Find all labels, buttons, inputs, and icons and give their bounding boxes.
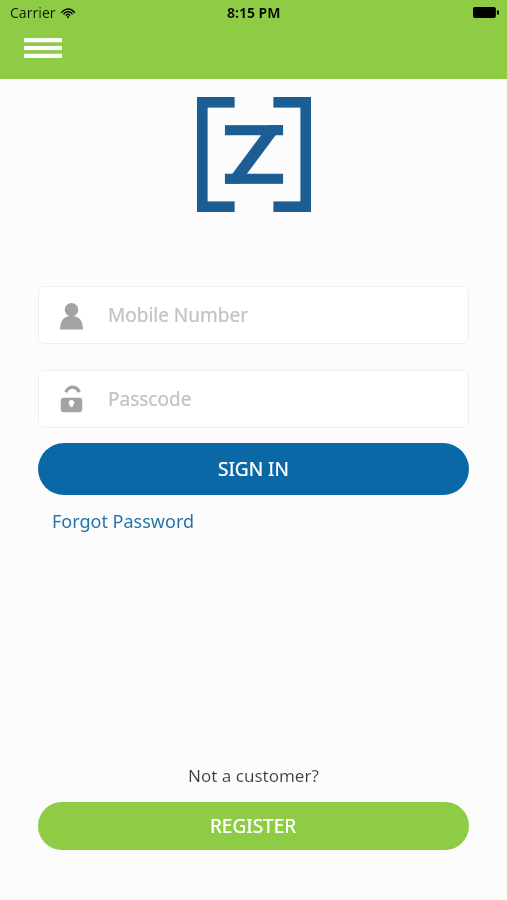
button[interactable]: Mobile Number [38, 286, 469, 344]
button[interactable]: Forgot Password [52, 509, 195, 534]
button[interactable]: Passcode [38, 370, 469, 428]
button[interactable]: SIGN IN [38, 443, 469, 495]
staticText: Mobile Number [108, 302, 249, 328]
staticText: 8:15 PM [227, 3, 281, 22]
staticText: Forgot Password [52, 509, 195, 534]
staticText: SIGN IN [218, 456, 289, 482]
staticText: Carrier [10, 3, 56, 22]
button[interactable]: Menu [16, 30, 70, 64]
button[interactable]: REGISTER [38, 802, 469, 850]
staticText: REGISTER [210, 813, 297, 839]
staticText: Not a customer? [188, 764, 319, 787]
staticText: Passcode [108, 386, 192, 412]
